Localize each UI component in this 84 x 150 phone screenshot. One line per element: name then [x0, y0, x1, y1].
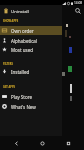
button[interactable]: Play Store: [0, 92, 62, 101]
button[interactable]: Home: [32, 136, 52, 150]
button[interactable]: Back: [6, 136, 26, 150]
button[interactable]: Own order: [0, 26, 62, 35]
staticText: 14:08: [74, 1, 83, 5]
staticText: FILTERS: [3, 62, 13, 66]
staticText: Most used: [11, 47, 33, 53]
button[interactable]: Most used: [0, 45, 62, 54]
button[interactable]: Installed: [0, 67, 62, 76]
staticText: Play Store: [11, 94, 32, 100]
button[interactable]: Recent apps: [58, 136, 78, 150]
button[interactable]: Search: [72, 5, 84, 16]
staticText: GET APPS: [3, 85, 15, 89]
button[interactable]: Uninstall: [0, 5, 11, 16]
staticText: Installed: [11, 69, 30, 75]
staticText: SHOW APPS: [3, 19, 19, 23]
button[interactable]: Alphabetical: [0, 36, 62, 45]
staticText: What's New: [11, 104, 36, 110]
staticText: Own order: [11, 28, 34, 34]
button[interactable]: What's New: [0, 102, 62, 111]
staticText: Alphabetical: [11, 38, 38, 44]
staticText: Uninstall: [11, 8, 29, 14]
